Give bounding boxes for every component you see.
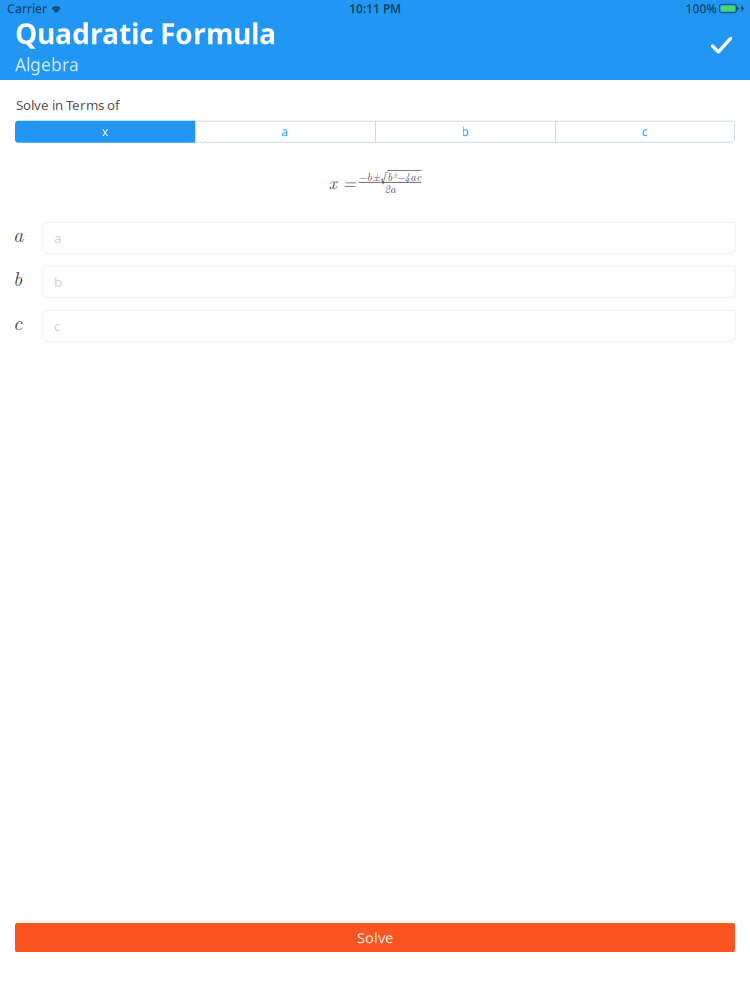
staticText: b (54, 273, 62, 291)
staticText: b (461, 124, 468, 140)
staticText: a (13, 220, 23, 248)
staticText: x = (329, 170, 356, 194)
staticText: c (54, 317, 60, 335)
staticText: a (54, 229, 61, 247)
button[interactable]: c (555, 121, 735, 143)
staticText: √ (380, 166, 387, 187)
staticText: b (13, 264, 22, 292)
staticText: x (102, 124, 108, 140)
staticText: Algebra (15, 53, 79, 76)
button[interactable]: Done (704, 27, 740, 63)
staticText: −b± (359, 169, 380, 184)
staticText: Quadratic Formula (15, 15, 276, 52)
staticText: Solve (357, 928, 393, 947)
button[interactable]: a (195, 121, 375, 143)
staticText: b²−4ac (387, 169, 421, 184)
button[interactable]: b (375, 121, 555, 143)
staticText: Carrier (7, 0, 47, 16)
staticText: Solve in Terms of (16, 96, 120, 114)
button[interactable]: x (15, 121, 195, 143)
staticText: 100% (685, 0, 716, 16)
staticText: 10:11 PM (349, 0, 401, 16)
staticText: c (13, 308, 22, 336)
staticText: a (281, 124, 288, 140)
staticText: 2a (384, 180, 396, 196)
button[interactable]: Solve (15, 923, 735, 952)
staticText: c (642, 124, 648, 140)
